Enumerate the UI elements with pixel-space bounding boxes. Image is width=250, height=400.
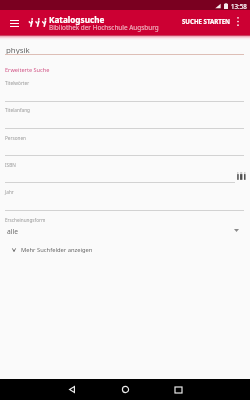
staticText: physik <box>6 45 30 56</box>
button[interactable]: Navigation menu <box>4 13 25 34</box>
staticText: Titelwörter <box>5 80 30 86</box>
staticText: alle <box>7 227 18 236</box>
button[interactable] <box>0 163 250 183</box>
button[interactable] <box>0 242 250 256</box>
staticText: Personen <box>5 135 26 141</box>
button[interactable] <box>0 82 250 102</box>
button[interactable]: Home <box>115 379 136 400</box>
staticText: Titelanfang <box>5 107 30 113</box>
staticText: Jahr <box>5 189 14 195</box>
staticText: SUCHE STARTEN <box>182 17 231 25</box>
button[interactable] <box>0 40 250 56</box>
button[interactable] <box>0 136 250 156</box>
staticText: 13:58 <box>231 2 247 10</box>
button[interactable] <box>0 191 250 211</box>
button[interactable]: More options <box>229 13 246 30</box>
staticText: Mehr Suchfelder anzeigen <box>21 246 93 254</box>
button[interactable]: SUCHE STARTEN <box>176 13 237 29</box>
button[interactable]: Back <box>61 379 82 400</box>
staticText: ISBN <box>5 162 16 168</box>
staticText: Erscheinungsform <box>5 217 46 223</box>
button[interactable]: Scan barcode <box>232 168 248 184</box>
staticText: Katalogsuche <box>49 14 105 25</box>
button[interactable] <box>0 214 250 236</box>
button[interactable]: Recent apps <box>168 379 189 400</box>
button[interactable] <box>0 109 250 129</box>
staticText: Erweiterte Suche <box>5 66 50 74</box>
staticText: Bibliothek der Hochschule Augsburg <box>49 23 159 32</box>
